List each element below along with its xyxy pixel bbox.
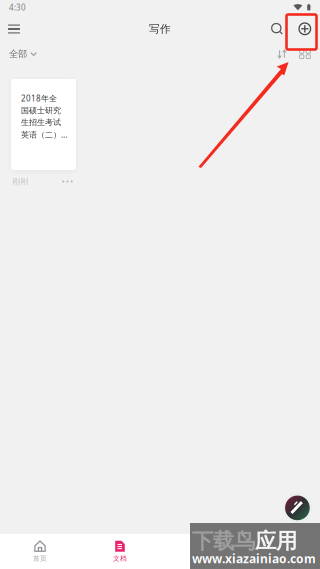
staticText: www.xiazainiao.com [192, 551, 316, 567]
staticText: 刚刚 [12, 177, 28, 186]
staticText: 应用 [255, 528, 297, 554]
staticText: 下载鸟 [192, 528, 255, 554]
button[interactable]: New document [290, 14, 320, 44]
button[interactable]: Sort [271, 43, 293, 65]
staticText: 生招生考试 [21, 117, 61, 127]
button[interactable]: Menu [0, 14, 28, 44]
button[interactable]: 首页 [0, 534, 80, 569]
button[interactable]: Search [264, 14, 290, 44]
staticText: 国硕士研究 [21, 106, 61, 115]
staticText: 文档 [113, 554, 127, 563]
button[interactable]: 2018年全 [11, 79, 76, 170]
staticText: 写作 [149, 22, 171, 35]
button[interactable]: Grid view [293, 43, 317, 65]
staticText: 4:30 [9, 2, 26, 13]
staticText: 下载鸟 [192, 528, 255, 554]
staticText: 英语（二）… [21, 129, 67, 140]
button[interactable]: More options [59, 174, 76, 189]
staticText: 首页 [33, 555, 47, 563]
button[interactable]: 文档 [80, 534, 160, 569]
button[interactable]: 全部 [0, 43, 37, 65]
staticText: 全部 [9, 48, 27, 60]
staticText: 2018年全 [21, 93, 57, 104]
